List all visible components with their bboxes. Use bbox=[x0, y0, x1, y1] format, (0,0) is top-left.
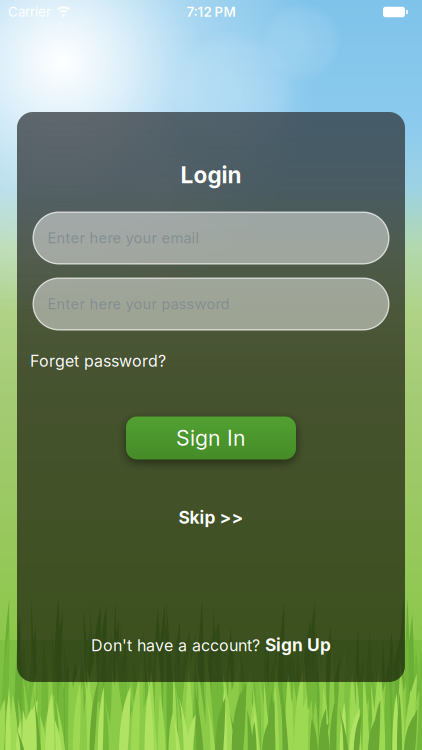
staticText: Don't have a account? Sign Up bbox=[91, 635, 331, 655]
button[interactable]: Sign In bbox=[126, 416, 296, 459]
staticText: Enter here your password bbox=[47, 295, 229, 313]
staticText: Forget password? bbox=[30, 352, 166, 370]
staticText: Skip >> bbox=[178, 507, 243, 528]
button[interactable]: Forget password? bbox=[30, 350, 166, 372]
button[interactable]: Enter here your email bbox=[32, 211, 389, 264]
staticText: 7:12 PM bbox=[186, 4, 235, 20]
button[interactable]: Don't have a account? Sign Up bbox=[91, 634, 331, 656]
staticText: Carrier bbox=[8, 4, 51, 20]
staticText: Login bbox=[180, 162, 241, 188]
button[interactable]: Skip >> bbox=[178, 506, 243, 528]
button[interactable]: Enter here your password bbox=[32, 277, 389, 330]
staticText: Sign In bbox=[176, 425, 246, 451]
staticText: Enter here your email bbox=[47, 229, 199, 247]
